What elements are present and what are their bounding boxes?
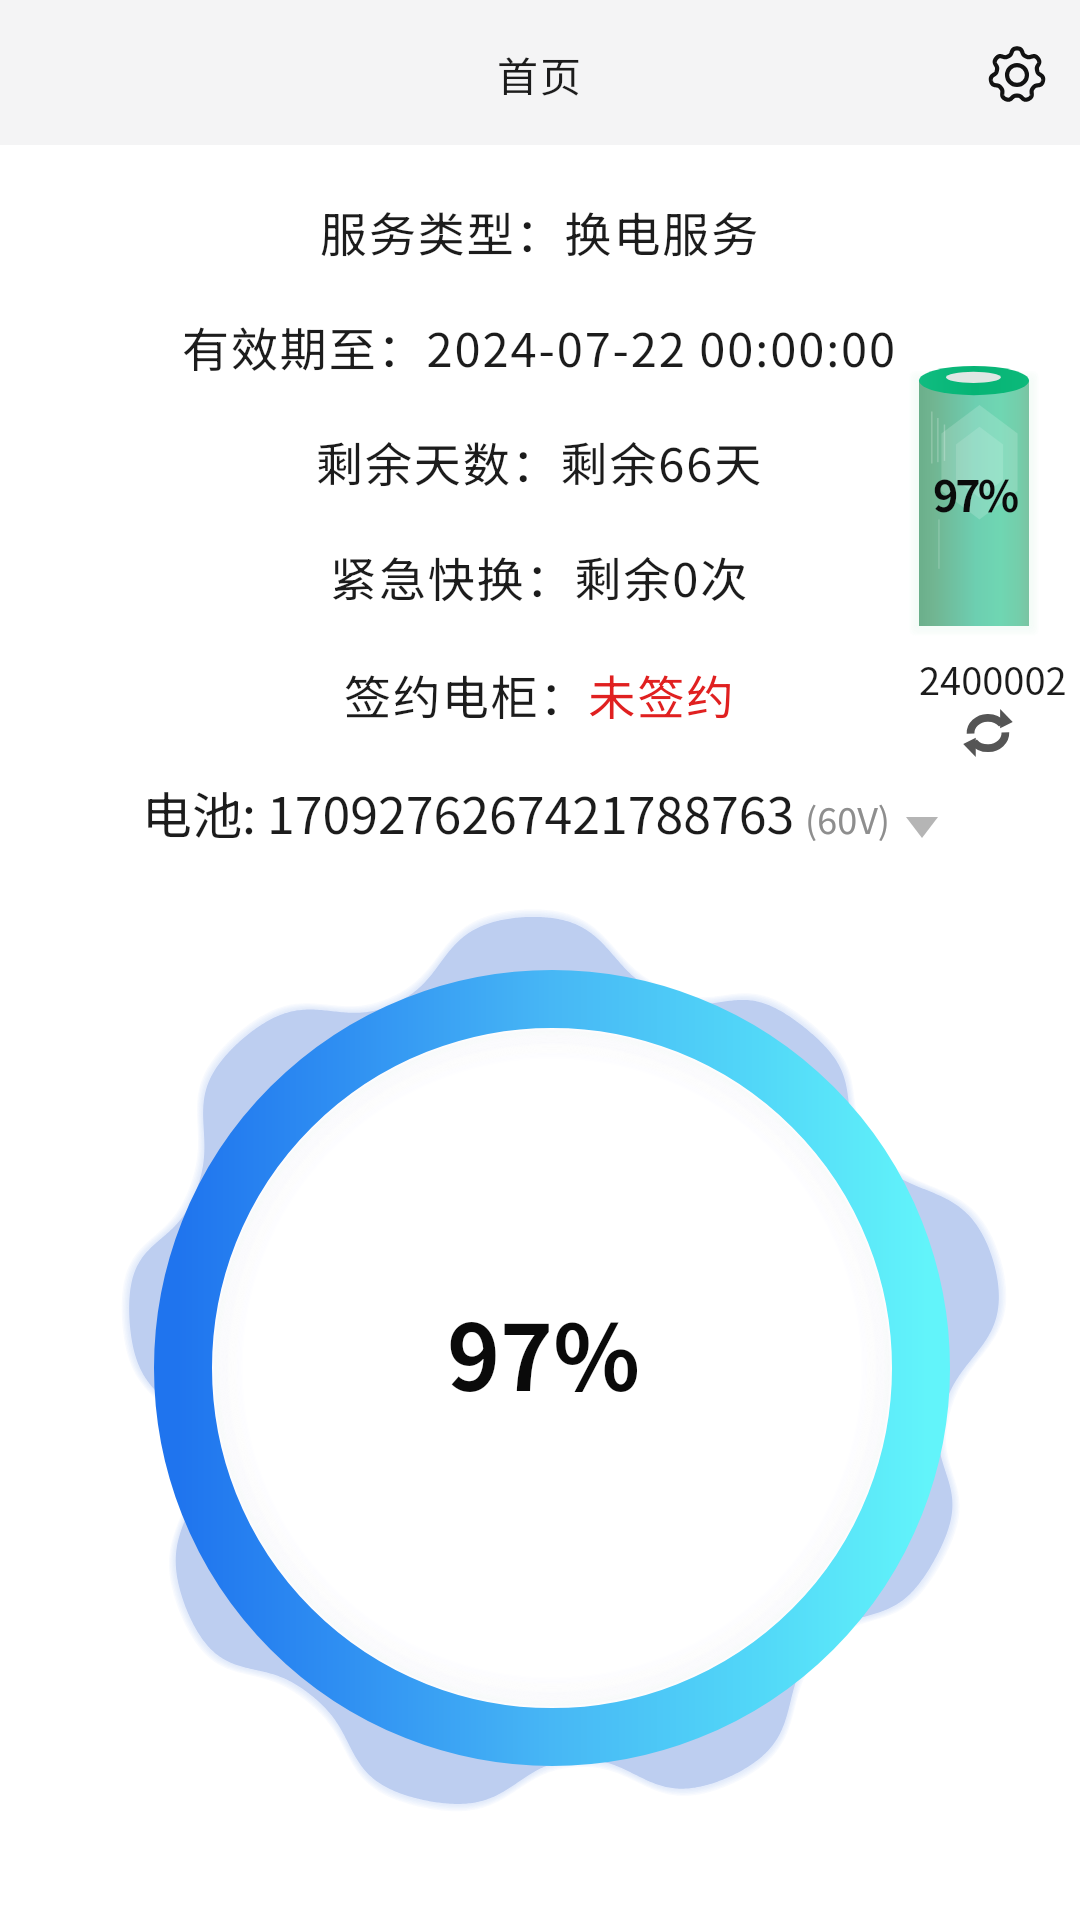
staticText: 电池: 1709276267421788763 — [142, 776, 795, 848]
staticText: 有效期至：2024-07-22 00:00:00 — [182, 312, 898, 380]
button[interactable]: Refresh — [956, 700, 1022, 766]
staticText: 97% — [447, 1287, 640, 1417]
staticText: 紧急快换：剩余0次 — [330, 542, 750, 610]
staticText: 签约电柜：未签约 — [344, 660, 736, 728]
staticText: 97% — [933, 462, 1017, 524]
staticText: 2400002 — [919, 651, 1067, 706]
staticText: (60V) — [805, 792, 890, 844]
button[interactable]: 电池: 1709276267421788763 — [142, 776, 938, 848]
button[interactable]: Settings — [974, 32, 1060, 118]
staticText: 首页 — [497, 44, 583, 103]
staticText: 剩余天数：剩余66天 — [316, 427, 764, 495]
staticText: 服务类型：换电服务 — [320, 197, 761, 265]
